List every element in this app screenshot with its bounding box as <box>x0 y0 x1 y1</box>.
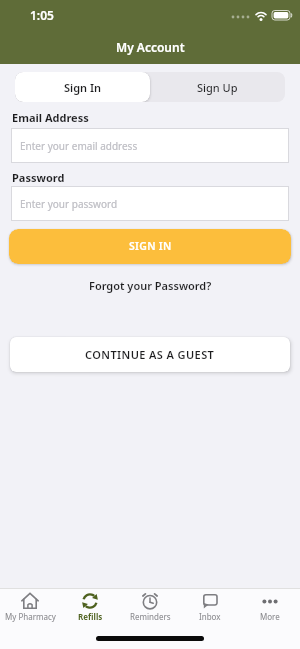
staticText: Reminders <box>130 611 171 622</box>
staticText: Enter your password <box>20 197 118 211</box>
staticText: Email Address <box>12 110 89 125</box>
staticText: More <box>260 611 280 622</box>
staticText: Sign Up <box>197 80 238 95</box>
staticText: 1:05 <box>30 7 54 23</box>
button[interactable]: CONTINUE AS A GUEST <box>10 337 290 372</box>
staticText: SIGN IN <box>129 239 172 253</box>
button[interactable]: SIGN IN <box>9 229 291 264</box>
button[interactable]: Refills <box>60 591 120 622</box>
staticText: My Account <box>116 39 185 55</box>
staticText: CONTINUE AS A GUEST <box>85 347 215 362</box>
staticText: Forgot your Password? <box>89 278 212 293</box>
button[interactable]: Sign In <box>15 72 150 102</box>
staticText: My Pharmacy <box>5 611 56 622</box>
button[interactable]: Reminders <box>120 591 180 622</box>
staticText: Inbox <box>199 611 221 622</box>
button[interactable]: Inbox <box>180 591 240 622</box>
button[interactable]: Forgot your Password? <box>0 278 300 293</box>
staticText: Enter your email address <box>20 139 138 153</box>
button[interactable]: My Pharmacy <box>0 591 60 622</box>
button[interactable]: Sign Up <box>150 72 285 102</box>
button[interactable]: More <box>240 591 300 622</box>
staticText: Password <box>12 170 65 185</box>
staticText: Sign In <box>64 80 102 95</box>
staticText: Refills <box>78 611 103 622</box>
